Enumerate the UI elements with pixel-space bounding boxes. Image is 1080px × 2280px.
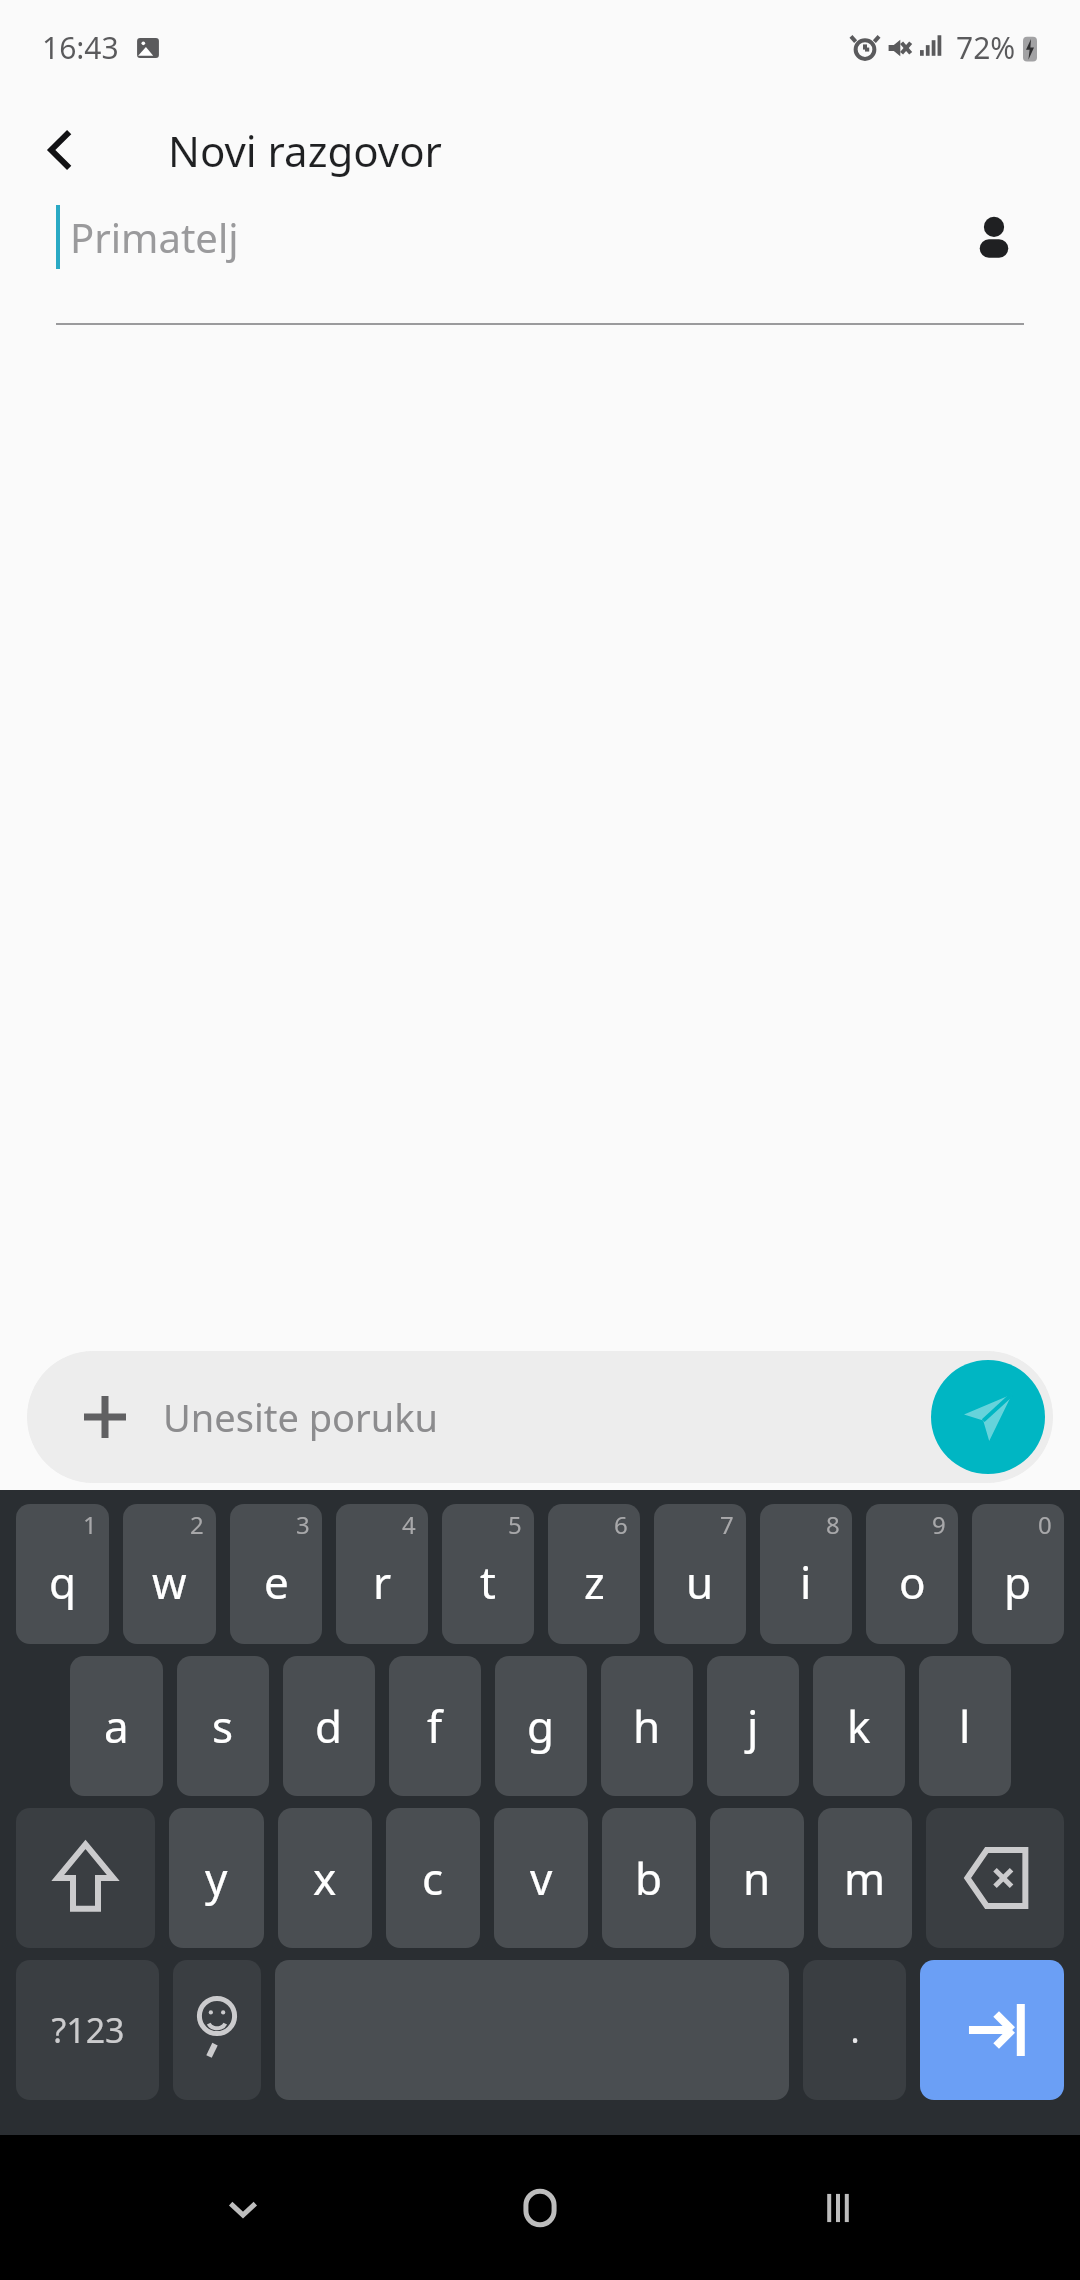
button[interactable]: 4 [336, 1504, 428, 1644]
button[interactable]: Choose contact [964, 207, 1024, 267]
button[interactable]: ?123 [16, 1960, 159, 2100]
button[interactable]: s [177, 1656, 269, 1796]
staticText: v [530, 1848, 553, 1908]
button[interactable]: l [919, 1656, 1011, 1796]
staticText: y [205, 1848, 228, 1908]
button[interactable]: Back [20, 110, 100, 190]
staticText: 6 [614, 1508, 628, 1541]
button[interactable]: d [283, 1656, 375, 1796]
staticText: x [313, 1848, 337, 1908]
button[interactable]: Hide keyboard [188, 2153, 298, 2263]
button[interactable]: 5 [442, 1504, 534, 1644]
staticText: Novi razgovor [168, 122, 442, 179]
staticText: f [427, 1696, 443, 1756]
button[interactable]: 7 [654, 1504, 746, 1644]
button[interactable]: h [601, 1656, 693, 1796]
button[interactable]: Recent apps [783, 2153, 893, 2263]
button[interactable]: Backspace [926, 1808, 1064, 1948]
staticText: t [480, 1552, 496, 1612]
button[interactable]: 8 [760, 1504, 852, 1644]
button[interactable]: Emoji [173, 1960, 261, 2100]
button[interactable]: v [494, 1808, 588, 1948]
staticText: 2 [190, 1508, 204, 1541]
staticText: Primatelj [70, 210, 239, 264]
staticText: 3 [296, 1508, 310, 1541]
staticText: k [847, 1696, 871, 1756]
staticText: 4 [402, 1508, 416, 1541]
staticText: w [152, 1552, 187, 1612]
staticText: 16:43 [42, 27, 119, 68]
button[interactable]: . [803, 1960, 906, 2100]
staticText: h [633, 1696, 661, 1756]
button[interactable]: Next [920, 1960, 1064, 2100]
staticText: m [844, 1848, 886, 1908]
button[interactable]: k [813, 1656, 905, 1796]
staticText: r [373, 1552, 392, 1612]
button[interactable]: Add attachment [27, 1351, 1053, 1483]
staticText: 7 [720, 1508, 734, 1541]
button[interactable]: j [707, 1656, 799, 1796]
staticText: e [264, 1552, 289, 1612]
staticText: u [686, 1552, 714, 1612]
button[interactable]: n [710, 1808, 804, 1948]
staticText: q [49, 1552, 77, 1612]
button[interactable]: Send [931, 1360, 1045, 1474]
button[interactable]: c [386, 1808, 480, 1948]
staticText: 9 [932, 1508, 946, 1541]
staticText: 8 [826, 1508, 840, 1541]
staticText: 72% [956, 27, 1016, 68]
button[interactable]: 1 [16, 1504, 109, 1644]
staticText: o [899, 1552, 926, 1612]
button[interactable]: f [389, 1656, 481, 1796]
staticText: z [584, 1552, 605, 1612]
button[interactable]: Add attachment [77, 1389, 133, 1445]
staticText: a [104, 1696, 129, 1756]
button[interactable]: Primatelj [0, 205, 1080, 325]
button[interactable]: 3 [230, 1504, 322, 1644]
staticText: 1 [83, 1508, 97, 1541]
button[interactable]: b [602, 1808, 696, 1948]
button[interactable]: 6 [548, 1504, 640, 1644]
button[interactable]: Home [485, 2153, 595, 2263]
staticText: p [1004, 1552, 1032, 1612]
staticText: j [747, 1696, 759, 1756]
button[interactable]: 0 [972, 1504, 1064, 1644]
button[interactable]: m [818, 1808, 912, 1948]
button[interactable]: a [70, 1656, 163, 1796]
staticText: i [800, 1552, 812, 1612]
staticText: 0 [1038, 1508, 1052, 1541]
button[interactable]: 2 [123, 1504, 216, 1644]
staticText: c [422, 1848, 444, 1908]
staticText: 5 [508, 1508, 522, 1541]
button[interactable]: Shift [16, 1808, 155, 1948]
staticText: Unesite poruku [163, 1391, 439, 1443]
staticText: ?123 [51, 2007, 125, 2053]
staticText: l [959, 1696, 971, 1756]
staticText: d [315, 1696, 343, 1756]
staticText: s [212, 1696, 234, 1756]
button[interactable]: y [169, 1808, 264, 1948]
button[interactable]: x [278, 1808, 372, 1948]
staticText: g [527, 1696, 555, 1756]
button[interactable]: 9 [866, 1504, 958, 1644]
button[interactable]: g [495, 1656, 587, 1796]
staticText: b [635, 1848, 663, 1908]
staticText: n [743, 1848, 771, 1908]
staticText: . [850, 2007, 860, 2053]
